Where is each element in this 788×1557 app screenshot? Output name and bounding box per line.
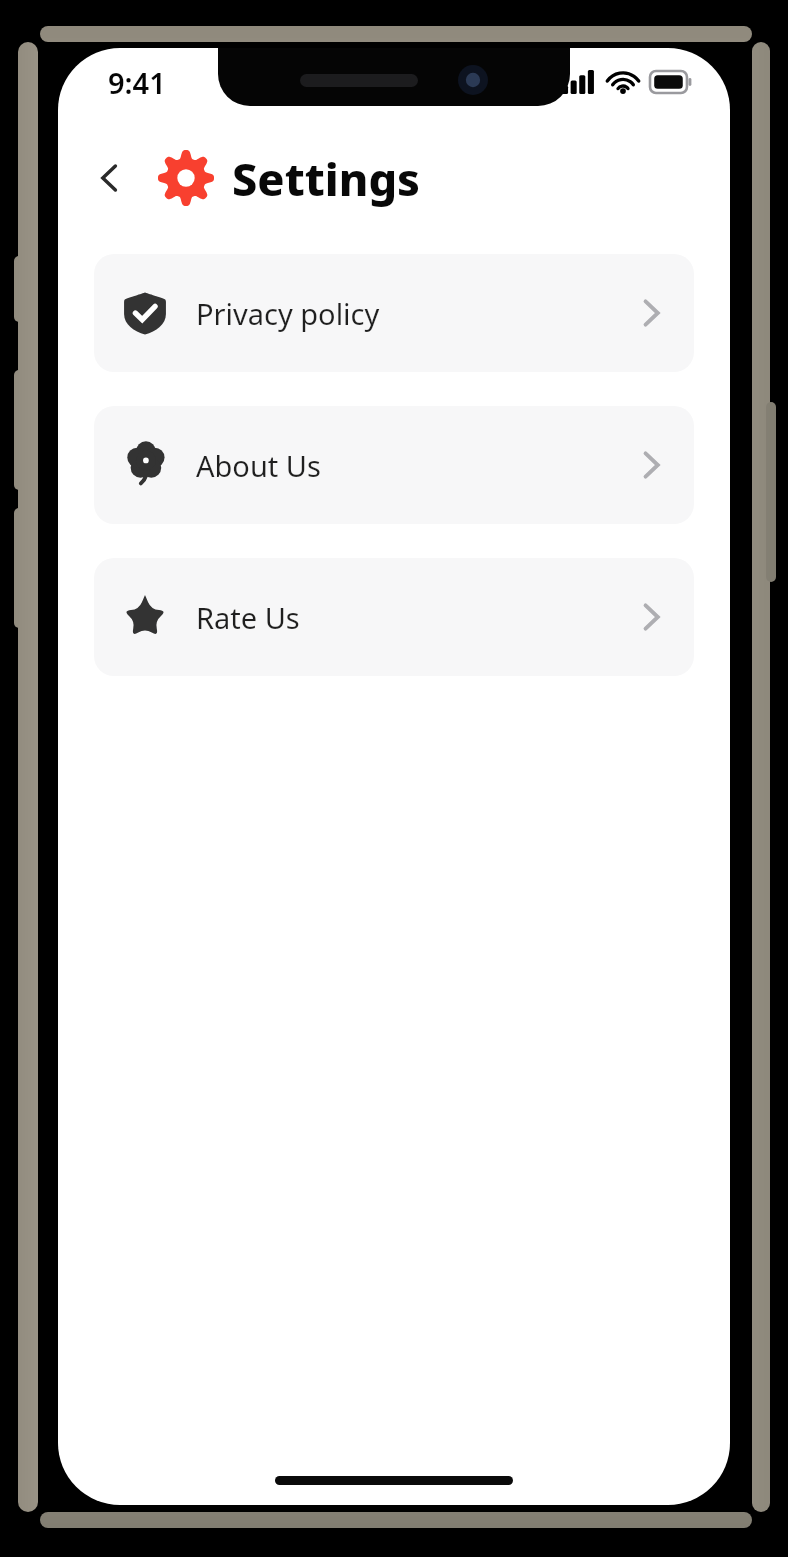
- staticText: About Us: [196, 446, 321, 485]
- staticText: Settings: [232, 148, 421, 209]
- button[interactable]: About Us: [94, 406, 694, 524]
- staticText: Privacy policy: [196, 294, 380, 333]
- staticText: Rate Us: [196, 598, 300, 637]
- button[interactable]: Privacy policy: [94, 254, 694, 372]
- button[interactable]: Rate Us: [94, 558, 694, 676]
- button[interactable]: Back: [80, 148, 140, 208]
- staticText: 9:41: [108, 63, 166, 102]
